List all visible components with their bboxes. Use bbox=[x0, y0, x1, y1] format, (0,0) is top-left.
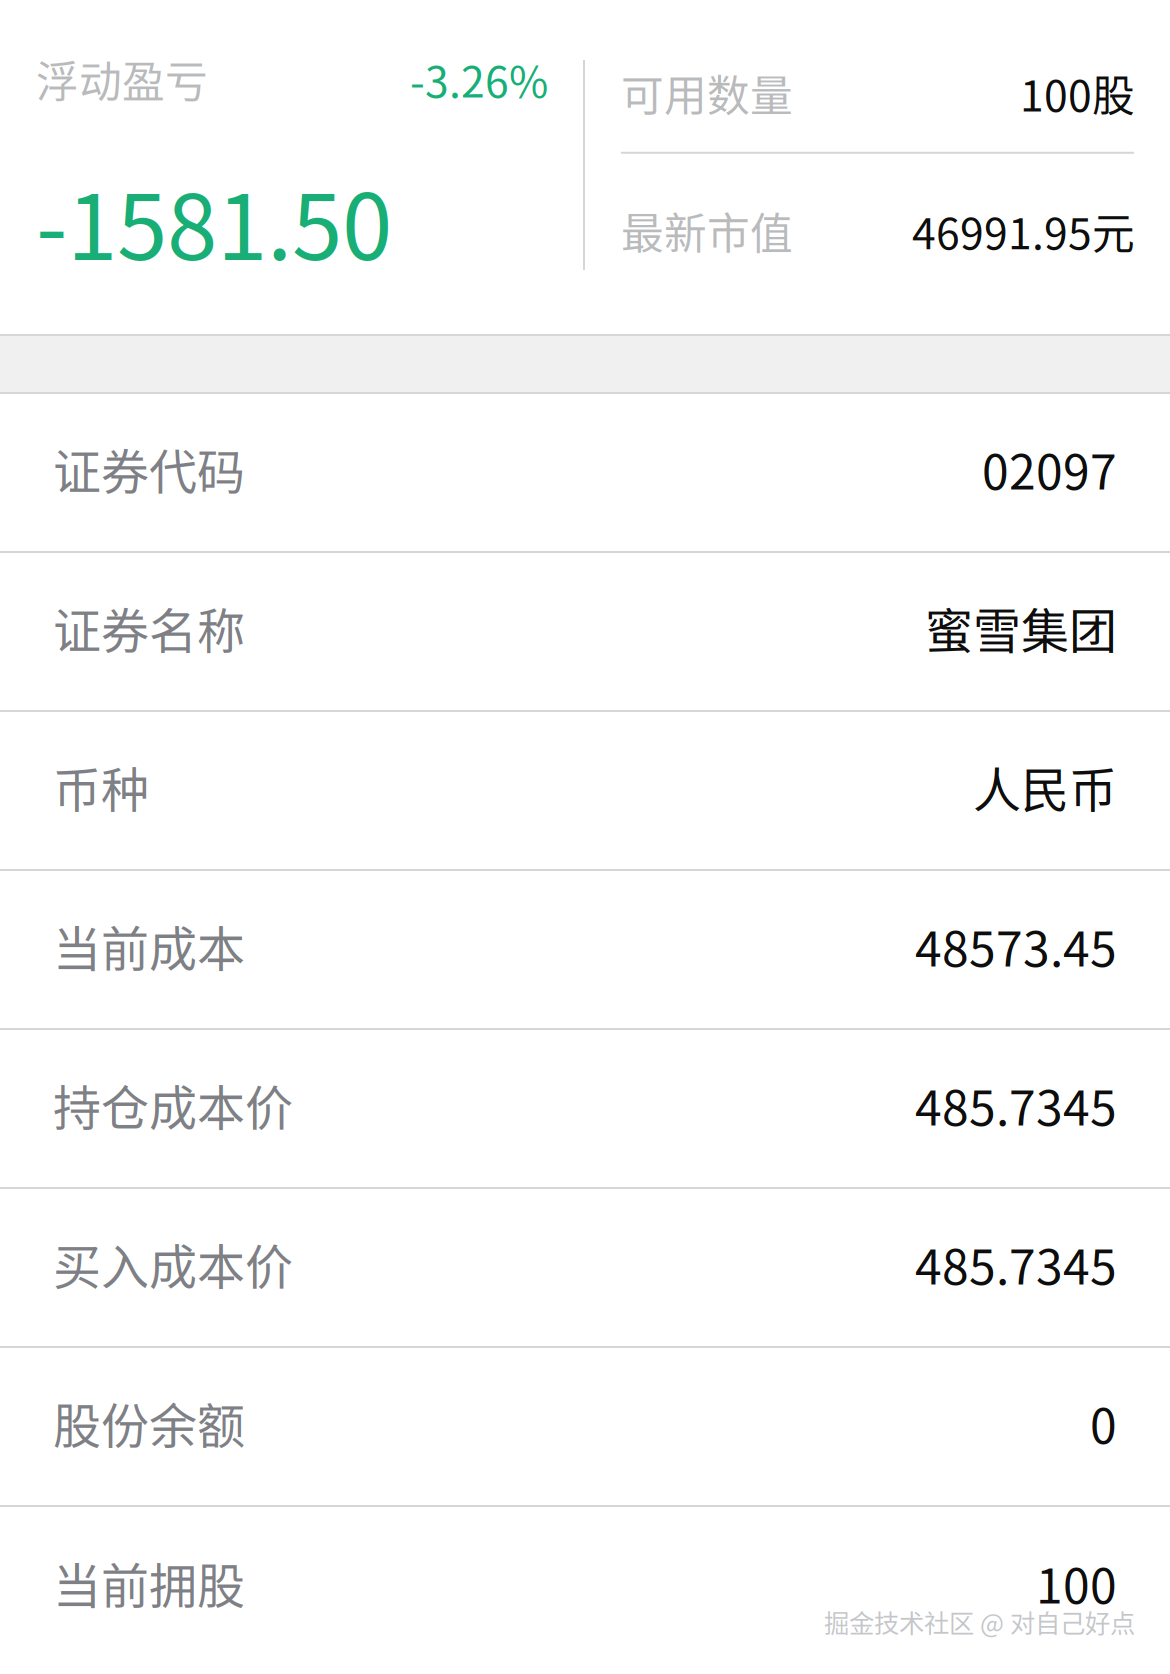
staticText: 最新市值 bbox=[621, 200, 793, 262]
button[interactable]: 持仓成本价 bbox=[0, 1030, 1170, 1189]
staticText: 48573.45 bbox=[915, 911, 1117, 980]
staticText: 0 bbox=[1090, 1388, 1117, 1457]
staticText: 可用数量 bbox=[621, 62, 793, 124]
staticText: 485.7345 bbox=[915, 1070, 1117, 1139]
staticText: 持仓成本价 bbox=[53, 1070, 293, 1139]
staticText: 浮动盈亏 bbox=[36, 48, 208, 110]
staticText: 股份余额 bbox=[53, 1388, 245, 1457]
staticText: 02097 bbox=[982, 434, 1117, 503]
button[interactable]: 币种 bbox=[0, 712, 1170, 871]
button[interactable]: 证券名称 bbox=[0, 553, 1170, 712]
staticText: 当前拥股 bbox=[53, 1548, 245, 1617]
button[interactable]: 股份余额 bbox=[0, 1348, 1170, 1507]
staticText: 当前成本 bbox=[53, 911, 245, 980]
button[interactable]: 可用数量 bbox=[621, 0, 1135, 124]
staticText: 蜜雪集团 bbox=[925, 593, 1117, 662]
staticText: 币种 bbox=[53, 752, 149, 821]
button[interactable]: 当前成本 bbox=[0, 871, 1170, 1030]
button[interactable]: 浮动盈亏 bbox=[0, 0, 583, 334]
button[interactable]: 买入成本价 bbox=[0, 1189, 1170, 1348]
staticText: 证券代码 bbox=[53, 434, 245, 503]
staticText: -1581.50 bbox=[36, 155, 392, 286]
staticText: 买入成本价 bbox=[53, 1229, 293, 1298]
staticText: 证券名称 bbox=[53, 593, 245, 662]
staticText: 人民币 bbox=[973, 752, 1117, 821]
button[interactable]: 当前拥股 bbox=[0, 1507, 1170, 1666]
staticText: 100股 bbox=[1020, 62, 1135, 124]
staticText: 46991.95元 bbox=[912, 200, 1135, 262]
button[interactable]: 最新市值 bbox=[621, 154, 1135, 262]
staticText: 掘金技术社区 @ 对自己好点 bbox=[824, 1603, 1135, 1640]
staticText: -3.26% bbox=[410, 48, 548, 110]
staticText: 485.7345 bbox=[915, 1229, 1117, 1298]
staticText: 100 bbox=[1036, 1548, 1117, 1617]
button[interactable]: 证券代码 bbox=[0, 394, 1170, 553]
